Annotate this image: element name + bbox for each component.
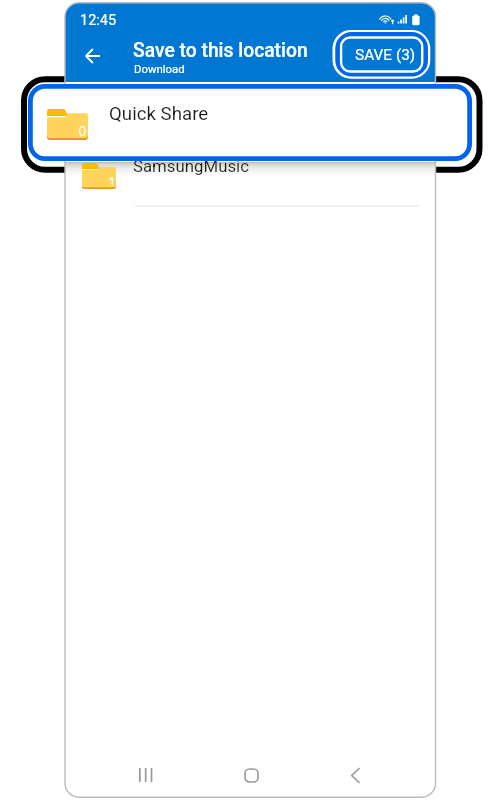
staticText: 12:45 [80, 12, 117, 29]
button[interactable] [65, 83, 436, 161]
button[interactable]: Home [227, 751, 275, 797]
button[interactable]: Back [331, 751, 379, 797]
staticText: SAVE (3) [355, 46, 416, 64]
button[interactable]: Navigate up [69, 33, 115, 79]
staticText: Download [134, 62, 185, 75]
staticText: Quick Share [109, 103, 209, 125]
button[interactable]: SAVE (3) [332, 30, 433, 82]
button[interactable]: SamsungMusic [65, 158, 436, 206]
staticText: SamsungMusic [133, 156, 249, 176]
button[interactable]: Quick Share [28, 84, 472, 161]
staticText: Save to this location [133, 39, 308, 62]
button[interactable]: Recent apps [122, 751, 170, 797]
